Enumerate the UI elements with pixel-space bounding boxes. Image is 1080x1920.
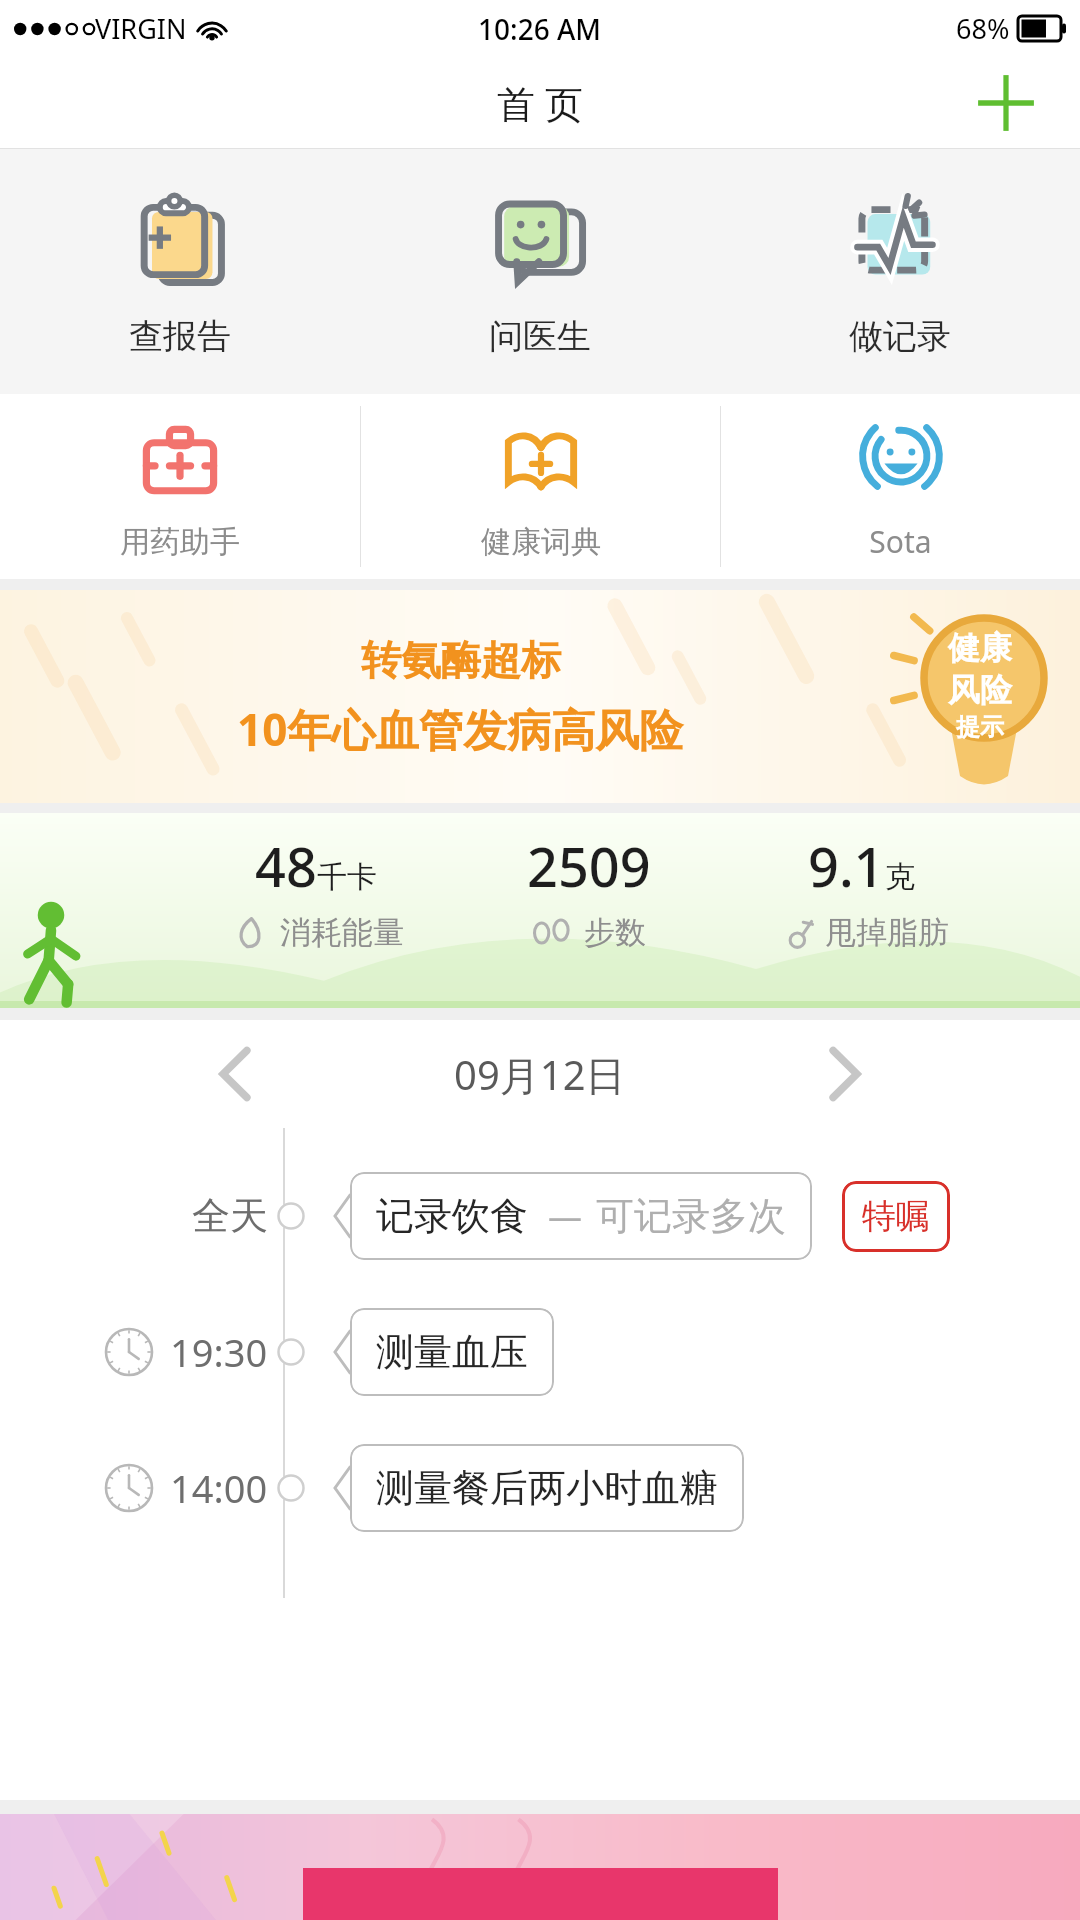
button[interactable]: 测量餐后两小时血糖	[376, 1464, 718, 1512]
staticText: 记录饮食	[376, 1192, 528, 1240]
button[interactable]: 14:00	[0, 1420, 1080, 1556]
staticText: 19:30	[170, 1326, 268, 1378]
staticText: 特嘱	[862, 1195, 930, 1238]
staticText: 测量餐后两小时血糖	[376, 1464, 718, 1512]
button[interactable]: Add	[970, 67, 1042, 139]
staticText: 14:00	[170, 1462, 268, 1514]
staticText: 甩掉脂肪	[825, 913, 949, 952]
staticText: 步数	[584, 913, 646, 952]
staticText: 全天	[192, 1192, 268, 1240]
staticText: —	[548, 1193, 582, 1239]
button[interactable]: 健康词典	[361, 394, 720, 579]
staticText: 查报告	[129, 315, 231, 358]
button[interactable]	[0, 1814, 1080, 1920]
button[interactable]: Sota	[721, 394, 1080, 579]
button[interactable]: 问医生	[360, 149, 720, 394]
staticText: 克	[885, 858, 915, 896]
staticText: 48	[255, 829, 317, 903]
staticText: 风险	[948, 670, 1012, 710]
staticText: 09月12日	[454, 1047, 626, 1102]
staticText: 首 页	[497, 77, 583, 129]
button[interactable]: 测量血压	[376, 1328, 528, 1376]
staticText: 消耗能量	[280, 913, 404, 952]
staticText: 9.1	[808, 829, 885, 903]
button[interactable]: 记录饮食	[376, 1192, 786, 1240]
button[interactable]: 19:30	[0, 1284, 1080, 1420]
staticText: 转氨酶超标	[361, 635, 561, 685]
staticText: 68%	[956, 10, 1010, 47]
staticText: 千卡	[317, 858, 377, 896]
staticText: VIRGIN	[95, 10, 187, 47]
button[interactable]: Previous day	[190, 1029, 280, 1119]
staticText: 测量血压	[376, 1328, 528, 1376]
staticText: 用药助手	[120, 523, 240, 561]
button[interactable]: 全天	[0, 1148, 1080, 1284]
staticText: 做记录	[849, 315, 951, 358]
staticText: 可记录多次	[596, 1192, 786, 1240]
button[interactable]: 用药助手	[0, 394, 360, 579]
button[interactable]: 48	[0, 813, 1080, 1008]
button[interactable]: 做记录	[720, 149, 1080, 394]
staticText: 10:26 AM	[478, 10, 602, 48]
button[interactable]: 转氨酶超标	[0, 590, 1080, 803]
button[interactable]: 特嘱	[862, 1195, 930, 1238]
button[interactable]: 查报告	[0, 149, 360, 394]
staticText: 2509	[527, 829, 651, 903]
staticText: 健康词典	[481, 523, 601, 561]
staticText: 健康	[948, 628, 1012, 668]
staticText: 10年心血管发病高风险	[237, 699, 684, 759]
staticText: 问医生	[489, 315, 591, 358]
button[interactable]: Next day	[800, 1029, 890, 1119]
staticText: Sota	[869, 521, 932, 562]
staticText: 提示	[956, 712, 1004, 742]
